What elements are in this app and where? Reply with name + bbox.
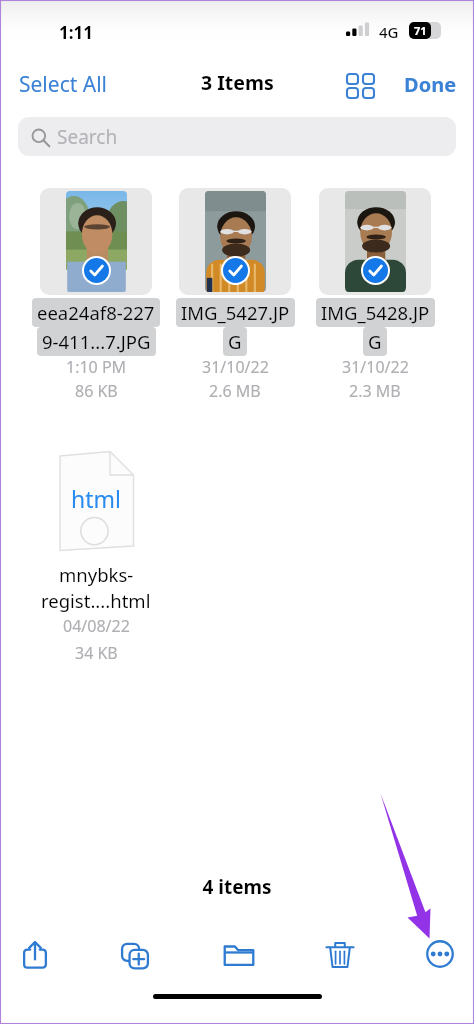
button[interactable]: html	[40, 450, 152, 664]
staticText: 1:11	[59, 21, 93, 44]
staticText: Select All	[19, 70, 108, 99]
staticText: G	[228, 329, 242, 354]
button[interactable]: Share	[12, 931, 58, 977]
staticText: 2.6 MB	[209, 380, 261, 402]
button[interactable]: IMG_5428.JP	[319, 188, 431, 402]
staticText: html	[71, 483, 121, 514]
button[interactable]: eea24af8-227	[40, 188, 152, 402]
staticText: 1:10 PM	[66, 356, 127, 378]
button[interactable]: Duplicate	[112, 931, 158, 977]
button[interactable]: Grid view	[340, 67, 378, 103]
staticText: 9-411...7.JPG	[42, 329, 151, 354]
button[interactable]: Move to folder	[216, 931, 262, 977]
button[interactable]: IMG_5427.JP	[179, 188, 291, 402]
staticText: eea24af8-227	[37, 300, 155, 325]
staticText: IMG_5428.JP	[321, 300, 430, 325]
button[interactable]: Search	[18, 117, 456, 156]
staticText: 4G	[379, 22, 399, 42]
button[interactable]: Select All	[19, 70, 108, 99]
staticText: Search	[57, 124, 118, 150]
staticText: 86 KB	[75, 380, 118, 402]
staticText: 71	[414, 23, 427, 38]
staticText: 4 items	[0, 874, 474, 900]
staticText: G	[368, 329, 382, 354]
button[interactable]: Done	[404, 71, 457, 98]
staticText: regist....html	[41, 588, 151, 613]
staticText: 3 Items	[201, 69, 274, 96]
staticText: Done	[404, 71, 457, 98]
button[interactable]: More	[417, 931, 463, 977]
staticText: 34 KB	[75, 642, 118, 664]
staticText: 2.3 MB	[349, 380, 401, 402]
staticText: 04/08/22	[63, 615, 130, 637]
staticText: mnybks-	[59, 562, 134, 587]
button[interactable]: Delete	[317, 931, 363, 977]
staticText: IMG_5427.JP	[181, 300, 290, 325]
staticText: 31/10/22	[202, 356, 269, 378]
staticText: 31/10/22	[342, 356, 409, 378]
